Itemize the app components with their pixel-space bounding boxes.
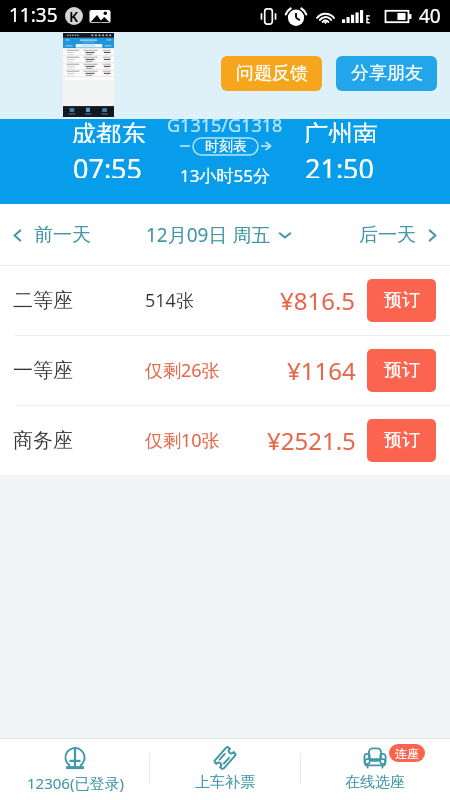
staticText: 分享朋友: [351, 62, 423, 85]
staticText: 连座: [395, 746, 419, 761]
other: Previous day: [9, 227, 26, 244]
staticText: 13小时55分: [180, 164, 270, 186]
staticText: 一等座: [13, 358, 73, 383]
button[interactable]: 问题反馈: [221, 56, 322, 91]
other: Next day: [424, 227, 441, 244]
staticText: 时刻表: [205, 138, 247, 155]
staticText: K: [69, 7, 79, 25]
staticText: 广州南: [303, 119, 378, 143]
staticText: 预订: [384, 289, 420, 312]
staticText: 12月09日 周五: [146, 222, 271, 248]
staticText: 在线选座: [345, 773, 405, 792]
staticText: 预订: [384, 429, 420, 452]
button[interactable]: 预订: [367, 419, 436, 462]
staticText: 仅剩10张: [145, 428, 220, 453]
staticText: 07:55: [73, 150, 143, 178]
staticText: 预订: [384, 359, 420, 382]
staticText: 商务座: [13, 428, 73, 453]
staticText: 40: [419, 3, 441, 29]
staticText: 成都东: [71, 119, 146, 143]
button[interactable]: 预订: [367, 279, 436, 322]
button[interactable]: 时刻表: [193, 138, 258, 155]
staticText: 二等座: [13, 288, 73, 313]
staticText: ¥816.5: [280, 284, 356, 317]
staticText: G1315/G1318: [167, 113, 283, 135]
staticText: 514张: [145, 288, 194, 313]
staticText: 后一天: [359, 223, 416, 247]
staticText: 上车补票: [195, 773, 255, 792]
staticText: 前一天: [34, 223, 91, 247]
staticText: 仅剩26张: [145, 358, 220, 383]
staticText: 11:35: [9, 2, 58, 28]
staticText: ¥2521.5: [267, 424, 356, 457]
button[interactable]: 12月09日 周五: [146, 222, 292, 248]
staticText: 问题反馈: [236, 62, 308, 85]
button[interactable]: 预订: [367, 349, 436, 392]
staticText: ¥1164: [287, 354, 356, 387]
button[interactable]: 12306(已登录): [0, 738, 150, 800]
staticText: 12306(已登录): [27, 773, 124, 793]
staticText: 21:50: [305, 150, 375, 178]
button[interactable]: 后一天: [359, 223, 441, 247]
button[interactable]: Previous day: [9, 223, 91, 247]
button[interactable]: 上车补票: [150, 738, 300, 800]
button[interactable]: 分享朋友: [336, 56, 437, 91]
button[interactable]: 在线选座: [300, 738, 450, 800]
